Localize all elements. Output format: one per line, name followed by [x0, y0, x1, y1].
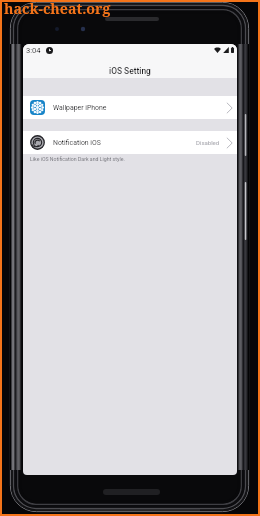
staticText: Like iOS Notification Dark and Light sty… — [30, 156, 125, 162]
staticText: Notification iOS — [53, 139, 101, 147]
staticText: 3:04 — [26, 46, 41, 55]
button[interactable]: Wallpaper iPhone — [23, 96, 237, 119]
staticText: iOS Setting — [109, 66, 151, 76]
staticText: Disabled — [196, 139, 220, 146]
staticText: hack-cheat.org — [4, 0, 111, 18]
staticText: Wallpaper iPhone — [53, 104, 107, 112]
button[interactable]: Notification iOS — [23, 131, 237, 154]
